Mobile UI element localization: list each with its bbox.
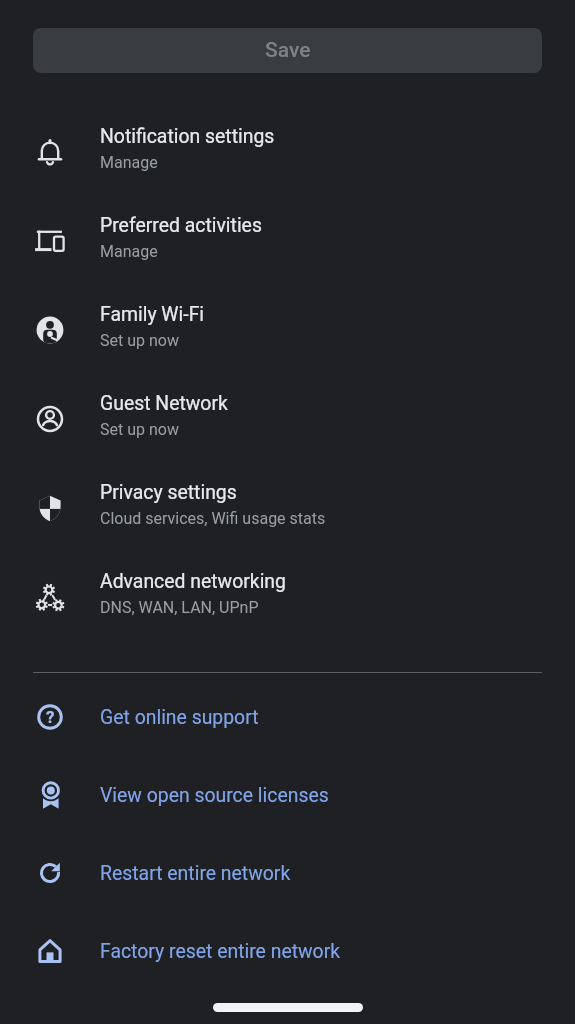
button[interactable]: Notification settings [0, 104, 575, 193]
staticText: Manage [100, 242, 158, 261]
button[interactable]: Factory reset entire network [0, 912, 575, 990]
staticText: ? [46, 707, 55, 727]
staticText: Guest Network [100, 392, 228, 415]
button[interactable]: Restart entire network [0, 834, 575, 912]
staticText: Set up now [100, 420, 179, 439]
button[interactable]: Family Wi-Fi [0, 282, 575, 371]
button[interactable]: Save [33, 28, 542, 73]
staticText: Restart entire network [100, 862, 291, 885]
staticText: Set up now [100, 331, 179, 350]
button[interactable]: Privacy settings [0, 460, 575, 549]
staticText: Preferred activities [100, 214, 262, 237]
staticText: Cloud services, Wifi usage stats [100, 509, 326, 528]
staticText: Advanced networking [100, 570, 286, 593]
staticText: Get online support [100, 706, 259, 729]
staticText: Family Wi-Fi [100, 303, 205, 326]
staticText: Factory reset entire network [100, 940, 341, 963]
staticText: View open source licenses [100, 784, 329, 807]
button[interactable]: View open source licenses [0, 756, 575, 834]
button[interactable]: Guest Network [0, 371, 575, 460]
staticText: Save [265, 38, 311, 63]
staticText: Manage [100, 153, 158, 172]
button[interactable]: Preferred activities [0, 193, 575, 282]
staticText: Notification settings [100, 125, 275, 148]
staticText: DNS, WAN, LAN, UPnP [100, 598, 259, 617]
button[interactable]: Advanced networking [0, 549, 575, 638]
button[interactable]: ? [0, 678, 575, 756]
staticText: Privacy settings [100, 481, 237, 504]
